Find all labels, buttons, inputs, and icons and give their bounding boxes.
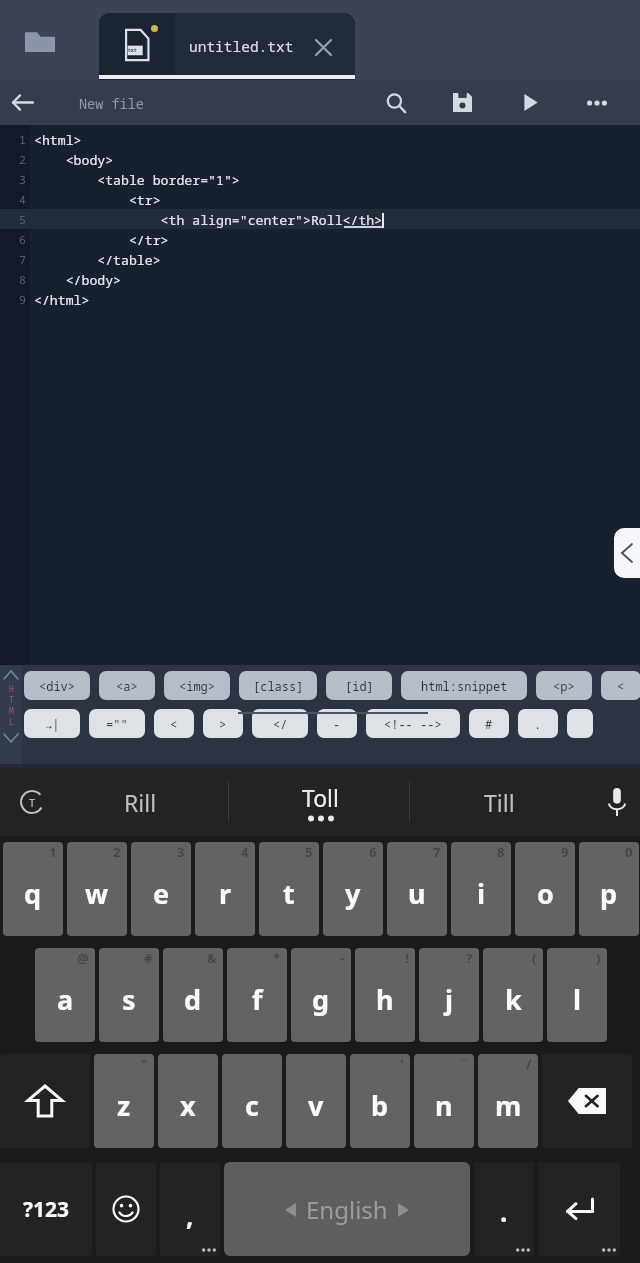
button[interactable]: [id] — [326, 671, 392, 700]
staticText: k — [505, 981, 522, 1018]
button[interactable]: @ — [35, 948, 95, 1042]
button[interactable]: Open panel — [614, 528, 640, 578]
staticText: . — [500, 1194, 508, 1229]
button[interactable]: <!-- --> — [366, 709, 460, 738]
button[interactable]: <div> — [24, 671, 90, 700]
staticText: s — [122, 981, 136, 1018]
button[interactable]: ¨ — [414, 1054, 474, 1148]
button[interactable]: v — [286, 1054, 346, 1148]
button[interactable]: ) — [547, 948, 607, 1042]
button[interactable]: 3 — [131, 842, 191, 936]
button[interactable]: <a> — [99, 671, 155, 700]
button[interactable]: 4 — [195, 842, 255, 936]
button[interactable]: Symbols — [0, 1162, 92, 1256]
button[interactable]: # — [469, 709, 509, 738]
button[interactable]: Enter — [538, 1162, 620, 1256]
button[interactable]: Back — [0, 80, 45, 125]
button[interactable]: ! — [355, 948, 415, 1042]
button[interactable]: 0 — [579, 842, 639, 936]
button[interactable]: * — [227, 948, 287, 1042]
button[interactable]: Backspace — [542, 1054, 632, 1148]
staticText: i — [477, 875, 486, 912]
button[interactable]: x — [158, 1054, 218, 1148]
staticText: 5 — [0, 212, 26, 228]
staticText: </html> — [34, 291, 90, 309]
button[interactable]: <p> — [536, 671, 592, 700]
button[interactable]: 5 — [259, 842, 319, 936]
button[interactable]: Close tab — [309, 33, 337, 61]
staticText: 9 — [0, 292, 26, 308]
button[interactable]: Voice input — [594, 768, 640, 836]
button[interactable]: & — [163, 948, 223, 1042]
staticText: > — [219, 716, 227, 732]
staticText: txt — [128, 46, 137, 54]
staticText: <!-- --> — [384, 716, 442, 732]
button[interactable]: ' — [350, 1054, 410, 1148]
staticText: <html> — [34, 131, 82, 149]
staticText: 8 — [497, 843, 505, 861]
staticText: Rill — [124, 787, 157, 818]
button[interactable]: - — [291, 948, 351, 1042]
button[interactable]: Space, English — [224, 1162, 470, 1256]
button[interactable]: <img> — [164, 671, 230, 700]
staticText: z — [117, 1087, 131, 1124]
staticText: <th align="center">Roll</th> — [34, 211, 383, 229]
button[interactable]: 1 — [3, 842, 63, 936]
button[interactable]: " — [94, 1054, 154, 1148]
button[interactable]: / — [478, 1054, 538, 1148]
staticText: 6 — [369, 843, 377, 861]
staticText: Till — [484, 787, 515, 818]
staticText: # — [485, 716, 493, 732]
button[interactable]: Emoji — [96, 1162, 156, 1256]
button[interactable]: Comma — [160, 1162, 220, 1256]
button[interactable]: ="" — [89, 709, 145, 738]
staticText: M — [9, 705, 14, 716]
staticText: q — [24, 875, 42, 912]
button[interactable]: 8 — [451, 842, 511, 936]
button[interactable]: Run — [508, 80, 553, 125]
button[interactable]: More options — [574, 80, 619, 125]
button[interactable]: Till — [424, 768, 574, 836]
button[interactable]: Open folder — [0, 0, 80, 80]
staticText: 4 — [0, 192, 26, 208]
button[interactable]: Save — [440, 80, 485, 125]
button[interactable]: 9 — [515, 842, 575, 936]
button[interactable]: # — [99, 948, 159, 1042]
button[interactable]: Search — [373, 80, 418, 125]
button[interactable]: . — [518, 709, 558, 738]
staticText: 8 — [0, 272, 26, 288]
button[interactable]: Period — [474, 1162, 534, 1256]
button[interactable]: Switch input — [0, 768, 64, 836]
staticText: 6 — [0, 232, 26, 248]
button[interactable]: - — [317, 709, 357, 738]
button[interactable]: Shift — [0, 1054, 90, 1148]
button[interactable]: 7 — [387, 842, 447, 936]
staticText: t — [283, 875, 295, 912]
button[interactable]: ? — [419, 948, 479, 1042]
button[interactable]: [class] — [239, 671, 317, 700]
button[interactable]: < — [601, 671, 640, 700]
button[interactable]: 6 — [323, 842, 383, 936]
staticText: @ — [77, 949, 89, 967]
staticText: 5 — [305, 843, 313, 861]
staticText: 9 — [561, 843, 569, 861]
button[interactable]: < — [154, 709, 194, 738]
button[interactable]: Rill — [65, 768, 215, 836]
button[interactable]: </ — [252, 709, 308, 738]
staticText: # — [144, 949, 153, 967]
button[interactable]: ( — [483, 948, 543, 1042]
button[interactable]: 2 — [67, 842, 127, 936]
staticText: a — [57, 981, 74, 1018]
staticText: - — [340, 949, 345, 967]
button[interactable]: →| — [24, 709, 80, 738]
button[interactable] — [567, 709, 593, 738]
staticText: " — [141, 1055, 148, 1073]
button[interactable]: Toll — [245, 768, 395, 836]
button[interactable]: c — [222, 1054, 282, 1148]
button[interactable]: html:snippet — [401, 671, 527, 700]
button[interactable]: txt — [99, 13, 355, 80]
button[interactable]: > — [203, 709, 243, 738]
staticText: 4 — [241, 843, 249, 861]
staticText: 1 — [49, 843, 57, 861]
staticText: untitled.txt — [189, 36, 294, 56]
